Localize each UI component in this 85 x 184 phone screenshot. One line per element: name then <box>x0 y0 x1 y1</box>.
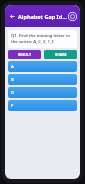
staticText: Q1. Find the missing letter in the serie… <box>11 33 74 45</box>
staticText: D <box>11 90 15 96</box>
button[interactable]: SHARE <box>44 50 77 59</box>
button[interactable]: B <box>8 74 77 85</box>
staticText: RESULT <box>18 52 32 57</box>
staticText: SHARE <box>55 52 67 57</box>
button[interactable]: RESULT <box>8 50 41 59</box>
button[interactable]: Back <box>7 11 17 21</box>
staticText: F <box>11 103 14 109</box>
button[interactable]: Q1. Find the missing letter in the serie… <box>8 30 77 48</box>
staticText: A <box>11 64 14 70</box>
button[interactable]: A <box>8 61 77 72</box>
button[interactable]: F <box>8 100 77 111</box>
staticText: Alphabet Gap Ident... <box>18 13 67 20</box>
button[interactable]: Score <box>67 11 78 22</box>
staticText: B <box>11 77 14 83</box>
button[interactable]: D <box>8 87 77 98</box>
